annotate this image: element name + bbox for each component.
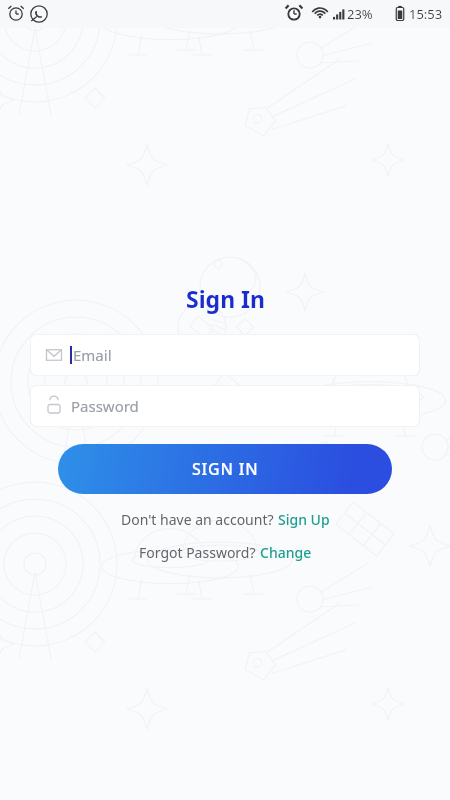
staticText: Forgot Password? [139,543,260,562]
staticText: Email [73,345,112,365]
staticText: SIGN IN [192,458,259,480]
staticText: 23% [347,5,373,23]
staticText: Sign Up [278,510,330,529]
staticText: Sign In [186,283,265,314]
staticText: Change [260,543,312,562]
button[interactable]: Change [260,543,312,562]
button[interactable]: Sign Up [278,510,330,529]
staticText: Don't have an account? [121,510,278,529]
staticText: Password [71,396,139,416]
button[interactable]: Password [30,385,420,427]
button[interactable]: Email [30,334,420,376]
staticText: 15:53 [409,5,443,23]
button[interactable]: SIGN IN [58,444,392,494]
